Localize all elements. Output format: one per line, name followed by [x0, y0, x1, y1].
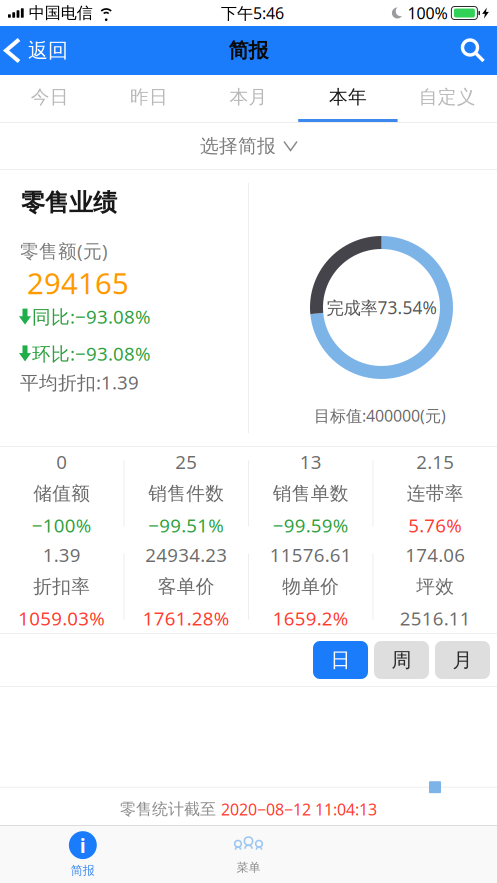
staticText: 下午5:46: [221, 2, 284, 24]
button[interactable]: i: [0, 826, 166, 883]
staticText: 日: [330, 648, 350, 672]
button[interactable]: 返回: [0, 26, 78, 75]
button[interactable]: 日: [313, 641, 368, 679]
staticText: 0: [56, 449, 67, 474]
staticText: 本年: [329, 85, 367, 108]
staticText: 零售统计截至: [120, 799, 221, 819]
staticText: 完成率73.54%: [326, 296, 436, 319]
staticText: 环比:−93.08%: [32, 341, 151, 366]
staticText: 100%: [407, 2, 447, 24]
button[interactable]: 自定义: [398, 75, 497, 122]
staticText: 零售额(元): [20, 238, 108, 263]
staticText: 1059.03%: [18, 606, 105, 631]
staticText: 坪效: [416, 575, 454, 598]
staticText: 折扣率: [33, 575, 90, 598]
staticText: 中国电信: [29, 3, 93, 23]
staticText: 2020−08−12 11:04:13: [221, 799, 377, 820]
staticText: 客单价: [158, 575, 215, 598]
staticText: 储值额: [33, 482, 90, 505]
staticText: 2516.11: [400, 606, 471, 631]
staticText: 月: [452, 648, 472, 672]
staticText: 物单价: [282, 575, 339, 598]
staticText: 目标值:400000(元): [314, 405, 446, 426]
staticText: −100%: [32, 513, 92, 538]
button[interactable]: 本年: [298, 75, 398, 122]
staticText: 1761.28%: [143, 606, 230, 631]
button[interactable]: 搜索: [449, 26, 497, 75]
staticText: 简报: [71, 863, 95, 878]
staticText: 1.39: [43, 542, 81, 567]
staticText: 294165: [27, 263, 129, 302]
staticText: −99.59%: [273, 513, 349, 538]
staticText: 11576.61: [270, 542, 352, 567]
staticText: 平均折扣:1.39: [20, 370, 139, 395]
staticText: 174.06: [405, 542, 465, 567]
button[interactable]: 今日: [0, 75, 99, 122]
staticText: i: [80, 832, 86, 858]
staticText: 自定义: [419, 85, 476, 108]
button[interactable]: 本月: [199, 75, 298, 122]
staticText: 简报: [228, 38, 268, 63]
button[interactable]: 月: [435, 641, 490, 679]
staticText: 周: [391, 648, 411, 672]
staticText: 25: [175, 449, 197, 474]
staticText: 销售单数: [273, 482, 349, 505]
staticText: 昨日: [130, 85, 168, 108]
staticText: 零售业绩: [21, 188, 117, 217]
button[interactable]: 菜单: [166, 826, 331, 883]
staticText: 销售件数: [148, 482, 224, 505]
staticText: 本月: [229, 85, 267, 108]
staticText: 选择简报: [200, 134, 276, 157]
staticText: 24934.23: [145, 542, 227, 567]
staticText: 13: [300, 449, 322, 474]
staticText: 连带率: [407, 482, 464, 505]
staticText: 今日: [31, 85, 69, 108]
staticText: 5.76%: [408, 513, 462, 538]
staticText: 2.15: [416, 449, 454, 474]
staticText: 菜单: [236, 860, 260, 875]
button[interactable]: 周: [374, 641, 429, 679]
staticText: 1659.2%: [273, 606, 349, 631]
button[interactable]: 选择简报: [0, 123, 497, 169]
button[interactable]: 昨日: [99, 75, 199, 122]
staticText: 返回: [28, 38, 68, 63]
staticText: −99.51%: [148, 513, 224, 538]
staticText: 同比:−93.08%: [32, 304, 151, 329]
